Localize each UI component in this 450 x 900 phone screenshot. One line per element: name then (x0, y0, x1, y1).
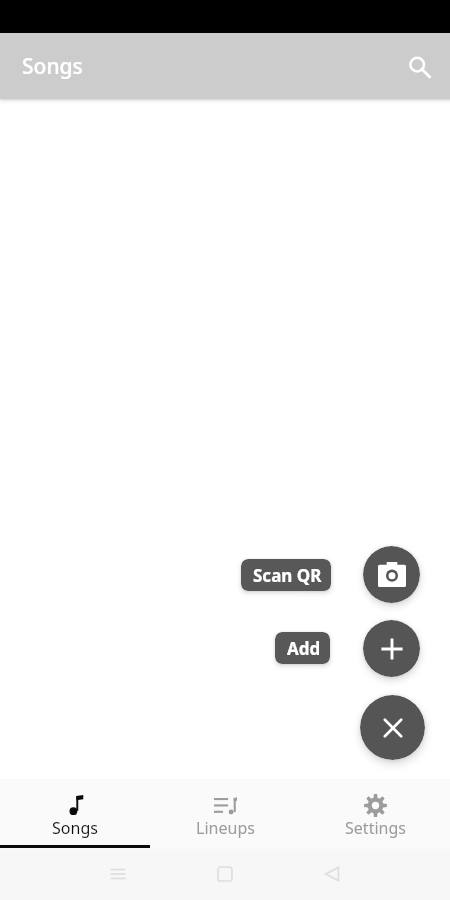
staticText: Songs (22, 52, 83, 81)
button[interactable]: Songs (0, 779, 150, 849)
button[interactable]: Back (312, 854, 352, 894)
staticText: Lineups (196, 817, 255, 839)
button[interactable]: Recents (98, 854, 138, 894)
staticText: Scan QR (253, 564, 322, 587)
button[interactable]: Add (363, 620, 420, 677)
staticText: Add (287, 637, 321, 660)
button[interactable]: Lineups (150, 779, 300, 849)
staticText: Settings (345, 817, 406, 839)
staticText: Songs (52, 817, 98, 839)
button[interactable]: Close menu (360, 695, 425, 760)
button[interactable]: Scan QR (241, 559, 331, 591)
button[interactable]: Search (398, 44, 443, 89)
button[interactable]: Scan QR (363, 546, 420, 603)
button[interactable]: Add (275, 632, 330, 664)
button[interactable]: Home (205, 854, 245, 894)
button[interactable]: Settings (300, 779, 450, 849)
